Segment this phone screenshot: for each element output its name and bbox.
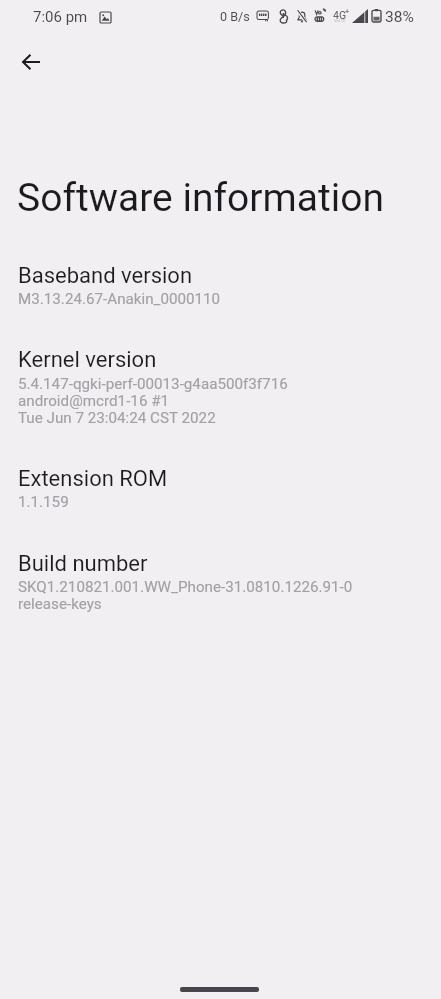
staticText: Build number: [18, 551, 148, 577]
staticText: Software information: [17, 175, 384, 221]
button[interactable]: Baseband version: [0, 251, 441, 317]
staticText: 4G: [333, 9, 347, 21]
staticText: M3.13.24.67-Anakin_0000110: [18, 290, 221, 308]
staticText: SKQ1.210821.001.WW_Phone-31.0810.1226.91…: [18, 578, 353, 596]
staticText: VoLTE: [334, 18, 346, 23]
staticText: Kernel version: [18, 347, 157, 373]
staticText: 0 B/s: [220, 9, 250, 24]
staticText: 7:06 pm: [33, 8, 88, 26]
staticText: Extension ROM: [18, 466, 168, 492]
staticText: Baseband version: [18, 263, 193, 289]
button[interactable]: Build number: [0, 539, 441, 622]
button[interactable]: Extension ROM: [0, 454, 441, 520]
staticText: +: [345, 7, 350, 16]
staticText: android@mcrd1-16 #1: [18, 392, 170, 410]
staticText: release-keys: [18, 595, 102, 613]
button[interactable]: Back: [7, 38, 55, 86]
staticText: 38%: [385, 8, 414, 26]
staticText: Tue Jun 7 23:04:24 CST 2022: [18, 409, 216, 427]
staticText: 5.4.147-qgki-perf-00013-g4aa500f3f716: [18, 375, 288, 393]
button[interactable]: Kernel version: [0, 335, 441, 436]
staticText: 1.1.159: [18, 493, 69, 511]
